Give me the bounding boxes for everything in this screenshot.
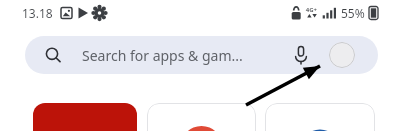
button[interactable]: Account bbox=[329, 42, 355, 68]
button[interactable] bbox=[265, 103, 375, 131]
button[interactable]: Account bbox=[25, 36, 378, 74]
button[interactable] bbox=[33, 103, 137, 131]
button[interactable] bbox=[147, 103, 256, 131]
